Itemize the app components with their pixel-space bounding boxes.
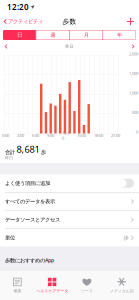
staticText: 日: [17, 32, 22, 38]
staticText: 年: [117, 32, 122, 38]
staticText: 3:00: [17, 133, 24, 138]
staticText: 1,000: [129, 90, 138, 96]
staticText: 21:00: [111, 133, 120, 138]
button[interactable]: 週: [36, 30, 69, 40]
button[interactable]: 月: [70, 30, 103, 40]
staticText: 9:00: [47, 133, 54, 138]
button[interactable]: 日: [3, 30, 36, 40]
button[interactable]: メディカルID: [104, 270, 139, 300]
staticText: 歩数におすすめのApp: [5, 257, 54, 264]
staticText: データソースとアクセス: [5, 216, 60, 223]
staticText: 6:00: [32, 133, 39, 138]
staticText: 歩数: [62, 17, 76, 26]
button[interactable]: Next day: [127, 44, 139, 49]
button[interactable]: ヘルスケアデータ: [35, 270, 70, 300]
button[interactable]: 年: [103, 30, 136, 40]
staticText: 12:00: [62, 130, 69, 141]
staticText: 2,000: [129, 51, 138, 57]
button[interactable]: 単位: [0, 229, 139, 247]
staticText: ソース: [81, 288, 93, 293]
staticText: 0:00: [2, 133, 9, 138]
staticText: 合計: [5, 149, 15, 155]
staticText: 単位: [5, 234, 15, 241]
button[interactable]: ソース: [69, 270, 104, 300]
staticText: 昨日: [5, 155, 13, 160]
button[interactable]: Add data: [122, 14, 139, 29]
staticText: 歩: [123, 234, 128, 241]
staticText: すべてのデータを表示: [5, 198, 55, 205]
button[interactable]: すべてのデータを表示: [0, 192, 139, 210]
staticText: 500: [132, 110, 138, 115]
staticText: 月: [84, 32, 89, 38]
staticText: 1,500: [129, 71, 138, 76]
staticText: 歩: [41, 149, 46, 155]
staticText: 8,681: [16, 143, 39, 155]
staticText: 昨日: [65, 44, 73, 49]
staticText: 18:00: [94, 133, 103, 138]
staticText: 概要: [13, 288, 21, 293]
button[interactable]: データソースとアクセス: [0, 211, 139, 228]
staticText: メディカルID: [110, 288, 134, 294]
staticText: よく使う項目に追加: [5, 180, 50, 186]
staticText: 週: [50, 32, 55, 38]
button[interactable]: 概要: [0, 270, 35, 300]
staticText: 0: [136, 129, 138, 135]
button[interactable]: よく使う項目に追加: [0, 174, 139, 192]
button[interactable]: Previous day: [0, 44, 12, 49]
button[interactable]: アクティビティ: [0, 14, 46, 29]
staticText: アクティビティ: [8, 18, 43, 25]
staticText: 12:20: [7, 2, 29, 12]
staticText: 15:00: [77, 133, 86, 138]
staticText: ヘルスケアデータ: [36, 288, 68, 293]
